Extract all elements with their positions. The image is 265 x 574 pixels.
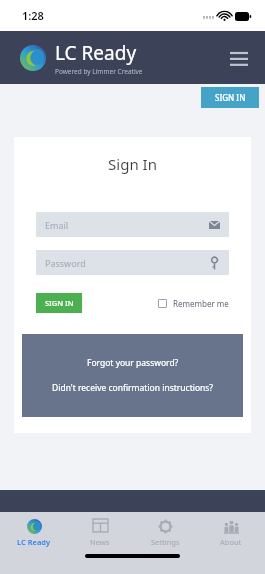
staticText: Settings [151,537,180,547]
staticText: Sign In [14,154,251,174]
button[interactable]: About [200,512,262,554]
staticText: SIGN IN [215,92,246,103]
button[interactable]: SIGN IN [201,87,259,108]
button[interactable]: Password [36,250,229,275]
staticText: Password [45,257,86,269]
staticText: 1:28 [22,8,44,23]
staticText: LC Ready [17,537,51,547]
button[interactable]: Settings [134,512,196,554]
staticText: Email [45,219,69,231]
staticText: News [90,537,110,547]
button[interactable]: Menu [225,44,253,72]
staticText: Remember me [173,298,229,309]
button[interactable]: News [69,512,131,554]
staticText: About [220,537,242,547]
staticText: SIGN IN [45,298,74,308]
button[interactable]: SIGN IN [36,293,82,313]
button[interactable]: Forgot your password? [87,357,179,369]
button[interactable]: Email [36,212,229,237]
staticText: Powered by Limmer Creative [55,67,143,76]
button[interactable]: Didn't receive confirmation instructions… [52,382,214,394]
staticText: LC Ready [55,40,137,66]
button[interactable]: LC Ready [3,512,65,554]
button[interactable]: Remember me [158,298,229,309]
